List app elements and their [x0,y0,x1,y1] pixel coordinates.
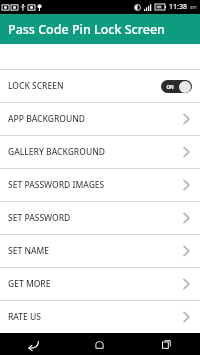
staticText: ON [166,84,174,90]
button[interactable]: SET PASSWORD [0,202,200,234]
staticText: RATE US [8,311,183,323]
button[interactable]: RATE US [0,301,200,333]
staticText: Pass Code Pin Lock Screen [8,21,165,38]
button[interactable]: GALLERY BACKGROUND [0,136,200,168]
button[interactable]: APP BACKGROUND [0,103,200,135]
button[interactable]: LOCK SCREEN [0,70,200,102]
staticText: LOCK SCREEN [8,80,161,92]
button[interactable]: Home [66,333,133,355]
button[interactable]: GET MORE [0,268,200,300]
button[interactable]: SET PASSWORD IMAGES [0,169,200,201]
staticText: SET PASSWORD IMAGES [8,179,183,191]
button[interactable]: Lock screen toggle, on [161,80,192,93]
staticText: GALLERY BACKGROUND [8,146,183,158]
button[interactable]: SET NAME [0,235,200,267]
button[interactable]: Recents [133,333,200,355]
staticText: GET MORE [8,278,183,290]
button[interactable]: Back [0,333,66,355]
staticText: SET PASSWORD [8,212,183,224]
staticText: SET NAME [8,245,183,257]
staticText: APP BACKGROUND [8,113,183,125]
staticText: 11:38 [169,2,187,12]
staticText: am [190,4,197,10]
